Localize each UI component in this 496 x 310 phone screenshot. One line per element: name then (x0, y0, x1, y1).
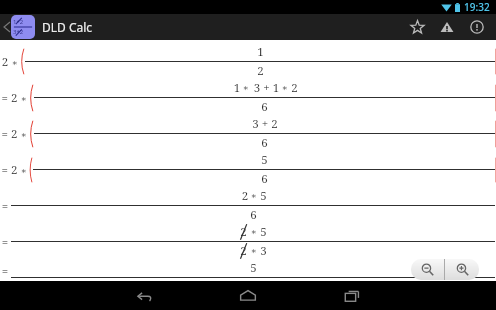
button[interactable]: 1*2 (0, 15, 99, 39)
button[interactable]: Home (217, 281, 279, 310)
button[interactable]: Info (462, 14, 492, 40)
staticText: 1 (232, 80, 242, 96)
staticText: 3 + 2 (252, 116, 278, 132)
staticText: ∗ (19, 128, 28, 140)
staticText: = (0, 198, 10, 214)
staticText: = 2 (0, 162, 19, 178)
staticText: 6 (261, 171, 268, 187)
staticText (247, 243, 250, 259)
staticText: = 2 (0, 90, 19, 106)
staticText: 3 (257, 243, 267, 259)
staticText: ∗ (19, 92, 28, 104)
staticText: 1 (257, 44, 264, 60)
button[interactable]: Warning (432, 14, 462, 40)
staticText: 2 (288, 80, 298, 96)
staticText: 6 (261, 135, 268, 151)
staticText: ∗ (10, 56, 19, 68)
staticText: 5 (257, 224, 267, 240)
staticText: 2 (0, 54, 10, 70)
staticText: 6 (250, 207, 257, 223)
button[interactable]: Zoom out (411, 259, 444, 280)
staticText: ∗ (250, 227, 257, 237)
staticText: 3*2 (13, 28, 24, 36)
staticText: ∗ (250, 191, 257, 201)
button[interactable]: Favorite (402, 14, 432, 40)
staticText (247, 224, 250, 240)
staticText: DLD Calc (42, 19, 93, 35)
staticText: 2 (240, 188, 250, 204)
staticText: 2 (257, 63, 264, 79)
staticText: 5 (250, 260, 257, 276)
staticText: 1*2 (13, 18, 24, 26)
button[interactable]: Back (113, 281, 175, 310)
staticText: 5 (257, 188, 267, 204)
staticText: ∗ (250, 246, 257, 256)
staticText: ∗ (281, 83, 288, 93)
staticText: = (0, 234, 10, 250)
staticText: ∗ (19, 164, 28, 176)
staticText: ∗ (242, 83, 249, 93)
staticText: 3 + 1 (249, 80, 281, 96)
button[interactable]: Recent apps (321, 281, 383, 310)
staticText: = 2 (0, 126, 19, 142)
staticText: 5 (261, 152, 268, 168)
staticText: 6 (261, 99, 268, 115)
staticText: = (0, 263, 10, 279)
staticText: 2 (240, 224, 247, 240)
staticText: 19:32 (464, 0, 490, 14)
staticText: 2 (240, 243, 247, 259)
button[interactable]: Zoom in (445, 259, 479, 280)
